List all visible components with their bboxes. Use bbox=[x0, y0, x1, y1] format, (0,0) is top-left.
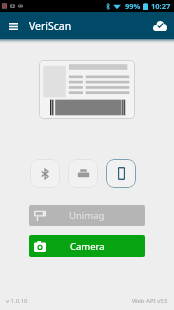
staticText: Camera bbox=[70, 240, 105, 253]
button[interactable]: Camera bbox=[29, 235, 145, 257]
staticText: v 1.0.10 bbox=[6, 297, 28, 305]
staticText: 99% bbox=[125, 1, 141, 11]
staticText: Web API v53 bbox=[132, 297, 168, 305]
staticText: Unimag bbox=[69, 209, 105, 222]
button[interactable]: Sync status bbox=[151, 14, 169, 38]
button[interactable]: Bluetooth bbox=[30, 159, 60, 188]
button[interactable]: Scanner bbox=[68, 159, 98, 188]
button[interactable]: Phone camera bbox=[106, 159, 136, 188]
button[interactable]: Menu bbox=[3, 14, 24, 38]
staticText: 10:27 bbox=[151, 1, 171, 11]
button[interactable]: Unimag bbox=[29, 205, 145, 226]
staticText: VeriScan bbox=[29, 19, 72, 33]
